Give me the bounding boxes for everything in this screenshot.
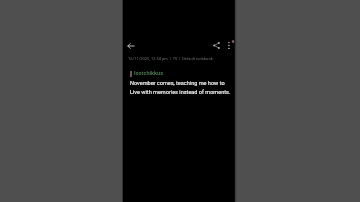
- button[interactable]: Share: [209, 38, 223, 52]
- staticText: November comes, teaching me how to Live …: [130, 80, 231, 95]
- button[interactable]: Back: [124, 39, 138, 53]
- staticText: lostchikkus: [134, 70, 164, 77]
- staticText: 16/11/2025, 12:54 pm | 75 | Default note…: [128, 56, 213, 61]
- button[interactable]: More options: [222, 38, 236, 52]
- button[interactable]: 16/11/2025, 12:54 pm | 75 | Default note…: [123, 53, 235, 99]
